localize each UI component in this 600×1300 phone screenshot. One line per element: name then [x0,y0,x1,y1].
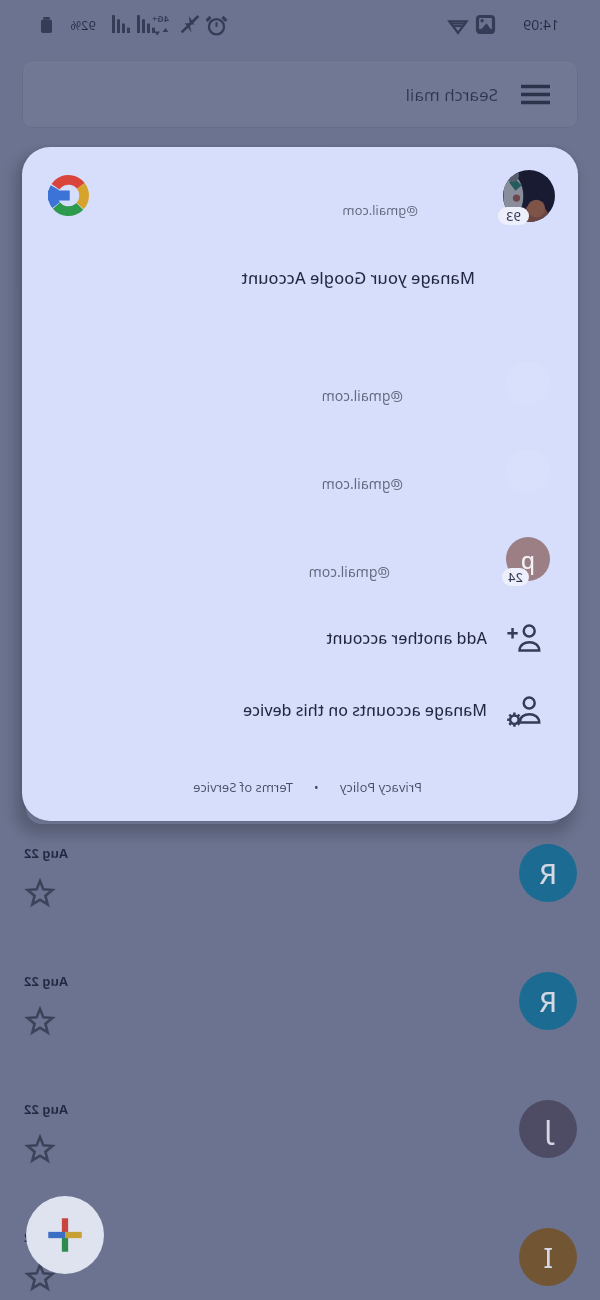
staticText: Manage your Google Account [241,266,475,288]
staticText: Aug 22 [24,844,68,862]
other: Star [27,1137,53,1163]
other: Star [27,1265,53,1291]
staticText: 93 [506,207,521,225]
staticText: R [539,854,557,892]
staticText: Aug 22 [24,1228,68,1246]
staticText: Add another account [326,627,487,649]
staticText: @gmail.com [321,474,403,493]
staticText: p [520,544,535,575]
button[interactable]: Manage your Google Account [241,266,475,288]
button[interactable]: @gmail.com [22,440,578,528]
button[interactable]: I [0,1219,600,1300]
other: Open navigation menu [521,85,550,104]
button[interactable]: p [22,528,578,616]
button[interactable]: Open navigation menu [22,60,578,128]
button[interactable]: @gmail.com [22,352,578,440]
staticText: Aug 22 [24,972,68,990]
staticText: J [544,1110,552,1148]
staticText: @gmail.com [321,386,403,405]
staticText: R [539,982,557,1020]
staticText: Search mail [405,83,498,106]
button[interactable]: Add another account [22,602,578,674]
staticText: I [543,1238,553,1276]
button[interactable]: Compose [26,1196,104,1274]
other: Star [27,1009,53,1035]
button[interactable]: J [0,1091,600,1219]
staticText: @gmail.com [308,562,390,581]
button[interactable]: Terms of Service [193,778,293,796]
staticText: Aug 22 [24,1100,68,1118]
staticText: 92% [70,16,96,34]
staticText: Manage accounts on this device [242,699,487,721]
button[interactable]: Manage accounts on this device [22,674,578,746]
button[interactable]: R [0,835,600,963]
other: Star [27,881,53,907]
button[interactable]: R [0,963,600,1091]
staticText: 14:09 [523,15,559,34]
button[interactable]: Privacy Policy [339,778,422,796]
staticText: 24 [508,568,523,586]
staticText: @gmail.com [342,201,418,219]
staticText: • [293,778,339,796]
staticText: 4G+ [152,12,169,24]
